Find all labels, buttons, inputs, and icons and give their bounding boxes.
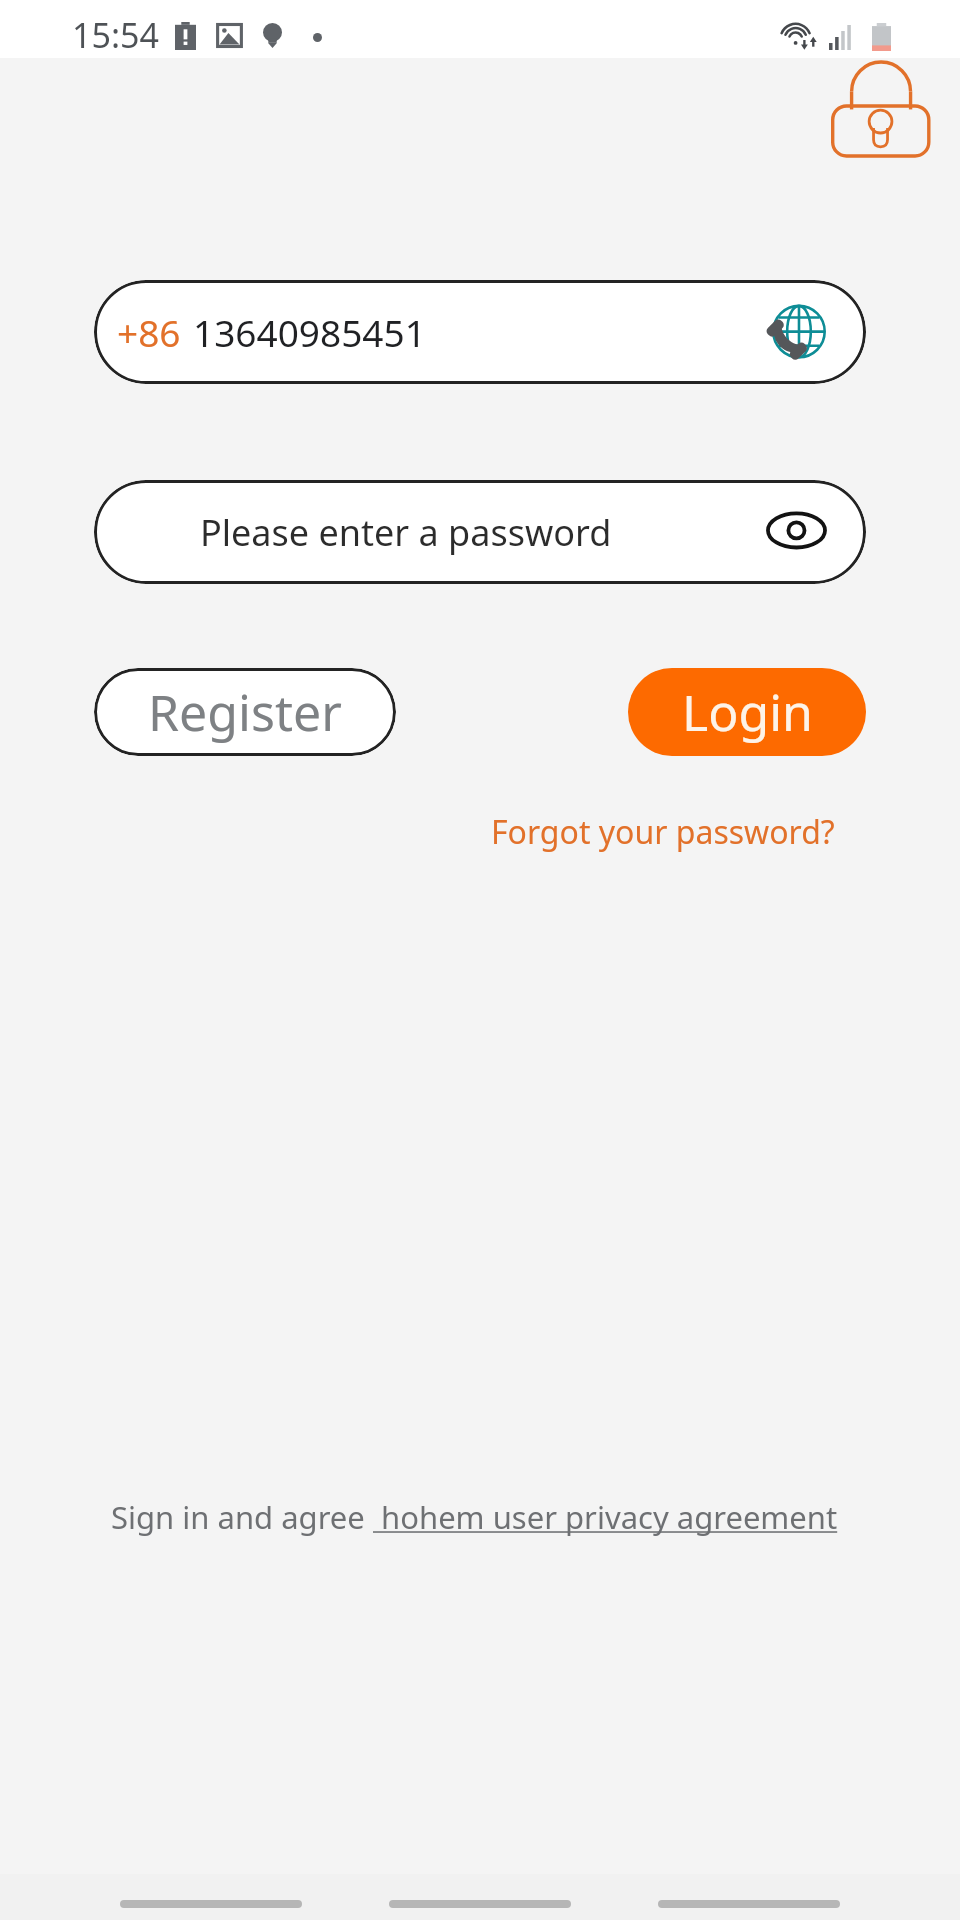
staticText: 15:54 <box>72 12 159 58</box>
staticText: Please enter a password <box>200 508 612 557</box>
button[interactable]: Please enter a password <box>94 480 866 584</box>
button[interactable]: Register <box>94 668 396 756</box>
button[interactable]: Navigation <box>658 1900 840 1908</box>
button[interactable]: Sign in and agree <box>111 1493 846 1541</box>
staticText: Forgot your password? <box>491 810 835 854</box>
staticText: Login <box>682 678 813 746</box>
button[interactable]: Login <box>628 668 866 756</box>
button[interactable]: Secure login <box>826 56 934 162</box>
staticText: Sign in and agree <box>111 1496 373 1538</box>
button[interactable]: Forgot your password? <box>481 807 845 857</box>
button[interactable]: +86 <box>94 280 866 384</box>
button[interactable]: Navigation <box>120 1900 302 1908</box>
button[interactable]: Show password <box>750 480 834 584</box>
staticText: hohem user privacy agreement <box>373 1496 846 1538</box>
staticText: Register <box>148 678 342 746</box>
staticText: 13640985451 <box>193 307 426 357</box>
button[interactable]: Select country code <box>764 280 836 384</box>
button[interactable]: Navigation <box>389 1900 571 1908</box>
staticText: +86 <box>117 307 181 357</box>
